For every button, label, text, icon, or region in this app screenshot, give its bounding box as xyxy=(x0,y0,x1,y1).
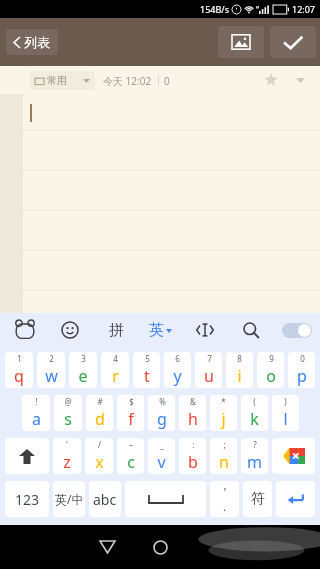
staticText: x xyxy=(95,451,104,473)
button[interactable]: / xyxy=(85,438,113,474)
button[interactable]: % xyxy=(148,395,175,431)
staticText: 英/中 xyxy=(55,491,84,507)
button[interactable]: 5 xyxy=(133,352,160,388)
button[interactable]: Home xyxy=(143,530,177,564)
staticText: 列表 xyxy=(24,34,50,50)
staticText: 英 xyxy=(149,321,164,340)
button[interactable]: Toggle xyxy=(282,323,312,338)
staticText: j xyxy=(221,408,226,430)
staticText: . xyxy=(223,499,226,514)
staticText: f xyxy=(128,408,134,430)
staticText: 常用 xyxy=(47,74,67,87)
button[interactable]: # xyxy=(86,395,113,431)
staticText: u xyxy=(204,365,214,387)
staticText: * xyxy=(221,396,226,407)
button[interactable]: 0 xyxy=(288,352,315,388)
button[interactable]: 123 xyxy=(5,481,49,517)
staticText: & xyxy=(190,396,196,407)
staticText: % xyxy=(159,396,166,407)
staticText: : xyxy=(192,439,195,450)
staticText: “ xyxy=(256,4,259,15)
staticText: – xyxy=(129,439,133,450)
staticText: 5 xyxy=(145,353,150,364)
button[interactable]: 英/中 xyxy=(53,481,85,517)
staticText: h xyxy=(188,408,198,430)
button[interactable]: * xyxy=(210,395,237,431)
button[interactable]: & xyxy=(179,395,206,431)
button[interactable]: 7 xyxy=(195,352,222,388)
button[interactable]: : xyxy=(179,438,206,474)
staticText: v xyxy=(157,451,166,473)
button[interactable]: @ xyxy=(54,395,82,431)
staticText: c xyxy=(127,451,135,473)
button[interactable]: Cursor control xyxy=(190,315,220,345)
staticText: ! xyxy=(35,396,38,407)
staticText: 12:07 xyxy=(292,3,316,15)
button[interactable]: Done xyxy=(270,26,316,58)
button[interactable]: 8 xyxy=(226,352,253,388)
button[interactable]: 列表 xyxy=(6,29,58,55)
button[interactable]: ) xyxy=(272,395,299,431)
button[interactable]: Search xyxy=(236,315,266,345)
button[interactable]: Input method menu xyxy=(10,315,40,345)
staticText: b xyxy=(188,451,198,473)
button[interactable]: ( xyxy=(241,395,268,431)
button[interactable]: Backspace xyxy=(272,438,315,474)
staticText: 今天 12:02 xyxy=(103,74,152,88)
button[interactable]: ’ xyxy=(210,481,239,517)
button[interactable]: 1 xyxy=(5,352,33,388)
staticText: 9 xyxy=(269,353,274,364)
button[interactable]: ? xyxy=(241,438,268,474)
button[interactable]: Space xyxy=(125,481,206,517)
staticText: ’ xyxy=(224,484,226,499)
staticText: ’ xyxy=(66,439,68,450)
staticText: 6 xyxy=(175,353,180,364)
button[interactable]: 2 xyxy=(37,352,65,388)
staticText: # xyxy=(97,396,103,407)
button[interactable]: abc xyxy=(89,481,121,517)
button[interactable]: 符 xyxy=(243,481,272,517)
staticText: l xyxy=(283,408,288,430)
button[interactable]: $ xyxy=(117,395,144,431)
button[interactable]: 3 xyxy=(69,352,97,388)
button[interactable]: 拼 xyxy=(101,315,131,345)
button[interactable]: ’ xyxy=(53,438,81,474)
staticText: abc xyxy=(93,490,117,509)
staticText: z xyxy=(63,451,71,473)
staticText: d xyxy=(95,408,105,430)
button[interactable]: Favorite xyxy=(260,69,282,91)
staticText: m xyxy=(247,451,262,473)
staticText: 3 xyxy=(81,353,86,364)
button[interactable]: _ xyxy=(148,438,175,474)
button[interactable]: Enter xyxy=(276,481,315,517)
button[interactable]: Back xyxy=(90,530,124,564)
staticText: 1 xyxy=(17,353,22,364)
button[interactable]: Shift xyxy=(5,438,49,474)
button[interactable]: Insert image xyxy=(218,26,264,58)
staticText: a xyxy=(32,408,41,430)
staticText: 123 xyxy=(15,490,40,509)
staticText: 0 xyxy=(164,74,170,88)
staticText: g xyxy=(157,408,167,430)
staticText: 拼 xyxy=(109,321,124,340)
staticText: 0 xyxy=(300,353,305,364)
staticText: 4 xyxy=(113,353,118,364)
staticText: _ xyxy=(160,439,164,450)
button[interactable]: 常用 xyxy=(30,71,95,90)
staticText: e xyxy=(78,365,88,387)
button[interactable]: More options xyxy=(290,70,310,90)
button[interactable]: – xyxy=(117,438,144,474)
button[interactable]: 英 xyxy=(147,321,174,340)
staticText: t xyxy=(144,365,150,387)
staticText: 2 xyxy=(49,353,54,364)
button[interactable]: ; xyxy=(210,438,237,474)
staticText: 154B/s xyxy=(200,3,229,15)
staticText: 8 xyxy=(237,353,242,364)
button[interactable]: 4 xyxy=(101,352,129,388)
staticText: / xyxy=(98,439,101,450)
button[interactable]: 6 xyxy=(164,352,191,388)
button[interactable]: 9 xyxy=(257,352,284,388)
button[interactable]: ! xyxy=(22,395,50,431)
button[interactable]: Emoji xyxy=(55,315,85,345)
staticText: q xyxy=(14,365,24,387)
